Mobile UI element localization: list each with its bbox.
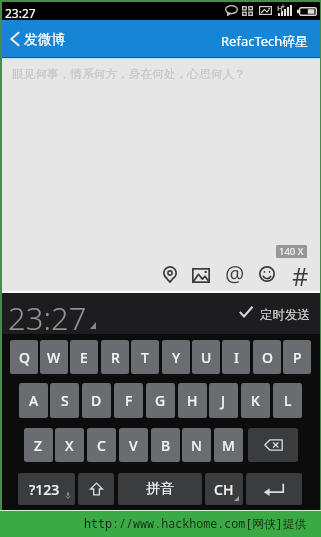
button[interactable]: U [192,340,220,374]
button[interactable]: Emoji [253,260,281,288]
button[interactable]: M [214,428,243,462]
staticText: 眼见何事，情系何方，身在何处，心思何人？ [12,67,246,82]
staticText: L [284,391,292,410]
button[interactable]: 140 X [276,245,307,258]
button[interactable]: Enter [246,473,302,505]
button[interactable]: A [19,383,48,418]
button[interactable]: Shift [78,473,114,505]
staticText: I [234,348,239,367]
staticText: H [277,3,283,13]
button[interactable]: R [101,340,129,374]
staticText: M [222,436,235,455]
button[interactable]: D [82,383,111,418]
staticText: http://www.hackhome.com[网侠]提供 [84,515,307,531]
button[interactable]: Photo [187,261,215,289]
button[interactable]: F [114,383,143,418]
button[interactable]: Location [156,260,184,288]
staticText: V [129,436,138,455]
button[interactable]: O [253,340,281,374]
button[interactable]: H [178,383,207,418]
staticText: S [61,391,69,410]
button[interactable]: T [131,340,159,374]
button[interactable]: I [222,340,250,374]
button[interactable]: Q [10,340,38,374]
staticText: K [251,391,260,410]
button[interactable]: Back [2,20,92,57]
staticText: + [281,2,286,12]
staticText: 140 X [279,245,304,258]
staticText: U [201,348,212,367]
other: Back [10,32,19,46]
button[interactable]: J [209,383,238,418]
staticText: RefacTech碎星 [221,32,309,50]
button[interactable]: L [273,383,302,418]
staticText: W [47,348,61,367]
button[interactable]: K [241,383,270,418]
button[interactable]: G [146,383,175,418]
staticText: J [221,391,226,410]
staticText: E [80,348,88,367]
staticText: 发微博 [24,31,66,48]
button[interactable]: 23:27 [6,293,101,334]
staticText: P [293,348,302,367]
button[interactable]: P [283,340,311,374]
button[interactable]: Backspace [248,428,298,462]
button[interactable]: Z [24,428,53,462]
button[interactable]: V [119,428,148,462]
staticText: N [191,436,202,455]
staticText: A [29,391,39,410]
button[interactable]: X [55,428,84,462]
staticText: X [65,436,74,455]
staticText: R [111,348,120,367]
staticText: # [292,259,309,287]
staticText: O [262,348,273,367]
staticText: Z [34,436,43,455]
staticText: F [125,391,133,410]
staticText: C [97,436,106,455]
button[interactable]: 定时发送 [234,296,318,330]
staticText: H [187,391,198,410]
staticText: 定时发送 [260,307,310,323]
button[interactable]: Y [162,340,190,374]
button[interactable]: B [151,428,180,462]
staticText: Y [172,348,181,367]
button[interactable]: CH [205,473,243,505]
button[interactable]: W [40,340,68,374]
staticText: ?123 [29,480,60,499]
button[interactable]: Mention [221,261,249,289]
staticText: B [161,436,171,455]
button[interactable]: S [50,383,79,418]
button[interactable]: ?123 [18,473,75,505]
staticText: T [141,348,149,367]
button[interactable]: 拼音 [118,473,202,505]
staticText: G [155,391,166,410]
staticText: 23:27 [5,5,36,21]
button[interactable]: C [87,428,116,462]
button[interactable]: N [182,428,211,462]
staticText: @ [225,259,245,287]
staticText: 23:27 [8,297,87,338]
button[interactable]: Topic [286,261,314,289]
staticText: Q [19,348,30,367]
staticText: 拼音 [146,480,174,498]
staticText: D [91,391,102,410]
staticText: CH [214,480,234,499]
button[interactable]: E [70,340,98,374]
